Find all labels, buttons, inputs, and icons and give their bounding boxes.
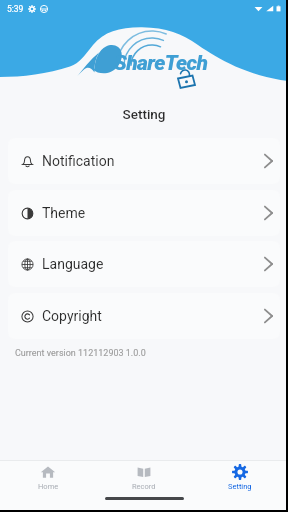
- button[interactable]: Copyright: [8, 293, 280, 339]
- button[interactable]: Home: [0, 461, 96, 491]
- staticText: Copyright: [42, 308, 102, 324]
- staticText: Setting: [228, 482, 252, 491]
- staticText: Current version 112112903 1.0.0: [15, 348, 146, 359]
- staticText: ShareTech: [114, 51, 208, 76]
- staticText: Record: [132, 482, 156, 491]
- button[interactable]: Notification: [8, 138, 280, 184]
- staticText: Home: [38, 482, 59, 491]
- button[interactable]: Setting: [192, 461, 288, 491]
- button[interactable]: Language: [8, 241, 280, 287]
- button[interactable]: Record: [96, 461, 192, 491]
- staticText: Theme: [42, 205, 86, 221]
- staticText: Language: [42, 256, 104, 272]
- button[interactable]: Theme: [8, 190, 280, 236]
- staticText: 5:39: [7, 4, 24, 14]
- staticText: Notification: [42, 153, 115, 169]
- staticText: Setting: [122, 106, 166, 122]
